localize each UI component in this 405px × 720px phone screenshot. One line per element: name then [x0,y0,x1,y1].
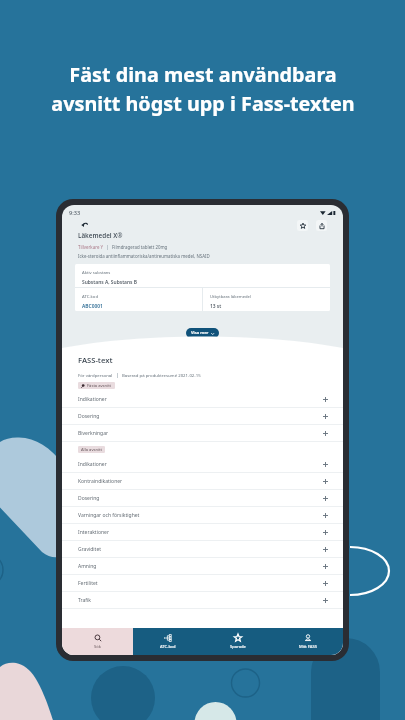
staticText: Sparade [230,644,246,650]
staticText: Mitt FASS [299,644,317,650]
button[interactable]: Sök [62,628,133,655]
button[interactable]: ATC-kod [133,628,203,655]
staticText: Indikationer [78,461,107,468]
button[interactable]: Indikationer [62,456,343,473]
staticText: ABC0001 [82,303,103,310]
button[interactable]: Visa mer [186,328,219,338]
staticText: Varningar och försiktighet [78,512,140,519]
staticText: ATC-kod [160,644,176,650]
staticText: Interaktioner [78,529,109,536]
staticText: Fästa avsnitt [87,383,112,389]
button[interactable]: Biverkningar [62,425,343,442]
staticText: ATC-kod [82,294,98,300]
staticText: Fertilitet [78,580,98,587]
staticText: FASS-text [78,355,113,365]
staticText: Baserad på produktresumé 2021-02-15 [122,372,201,378]
button[interactable]: Share [316,220,327,231]
staticText: Trafik [78,597,91,604]
staticText: Utbytbara läkemedel [210,294,252,300]
staticText: Indikationer [78,396,107,403]
staticText: Biverkningar [78,430,109,437]
button[interactable]: Alla avsnitt [78,446,105,453]
button[interactable]: Trafik [62,592,343,609]
button[interactable]: Dosering [62,408,343,425]
staticText: Sök [94,644,101,650]
staticText: Dosering [78,413,100,420]
staticText: Kontraindikationer [78,478,123,485]
button[interactable]: Indikationer [62,391,343,408]
staticText: Dosering [78,495,100,502]
button[interactable]: Interaktioner [62,524,343,541]
button[interactable]: Favourite [297,220,308,231]
staticText: Aktiv substans [82,270,111,276]
staticText: Alla avsnitt [81,447,102,453]
staticText: Substans A, Substans B [82,279,138,286]
staticText: Tillverkare Y [78,244,103,250]
button[interactable]: Mitt FASS [273,628,343,655]
button[interactable]: Fästa avsnitt [78,382,115,389]
staticText: Amning [78,563,97,570]
staticText: 9:33 [69,209,81,217]
staticText: Filmdragerad tablett 20mg [112,244,168,250]
button[interactable]: Dosering [62,490,343,507]
staticText: Icke-steroida antiinflammatoriska/antire… [78,253,210,259]
staticText: Läkemedel X® [78,231,123,240]
button[interactable]: Fertilitet [62,575,343,592]
button[interactable]: Graviditet [62,541,343,558]
staticText: Fäst dina mest användbara avsnitt högst … [51,61,355,117]
button[interactable]: Varningar och försiktighet [62,507,343,524]
button[interactable]: Back [78,219,90,231]
button[interactable]: Kontraindikationer [62,473,343,490]
button[interactable]: Amning [62,558,343,575]
button[interactable]: Sparade [203,628,273,655]
staticText: 13 st [210,303,222,310]
staticText: För vårdpersonal [78,372,113,378]
staticText: Graviditet [78,546,102,553]
staticText: Visa mer [191,330,209,336]
